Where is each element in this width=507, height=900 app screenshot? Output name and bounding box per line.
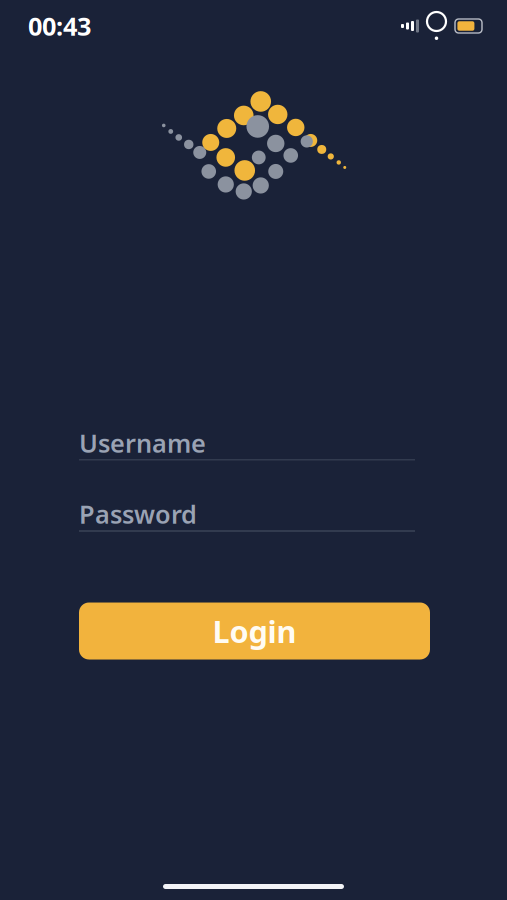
staticText: Username — [79, 426, 206, 460]
staticText: Login — [212, 611, 296, 651]
button[interactable]: Username — [79, 426, 415, 460]
staticText: 00:43 — [28, 9, 91, 43]
button[interactable]: Login — [79, 602, 430, 659]
button[interactable]: Password — [79, 497, 415, 531]
staticText: Password — [79, 497, 197, 531]
